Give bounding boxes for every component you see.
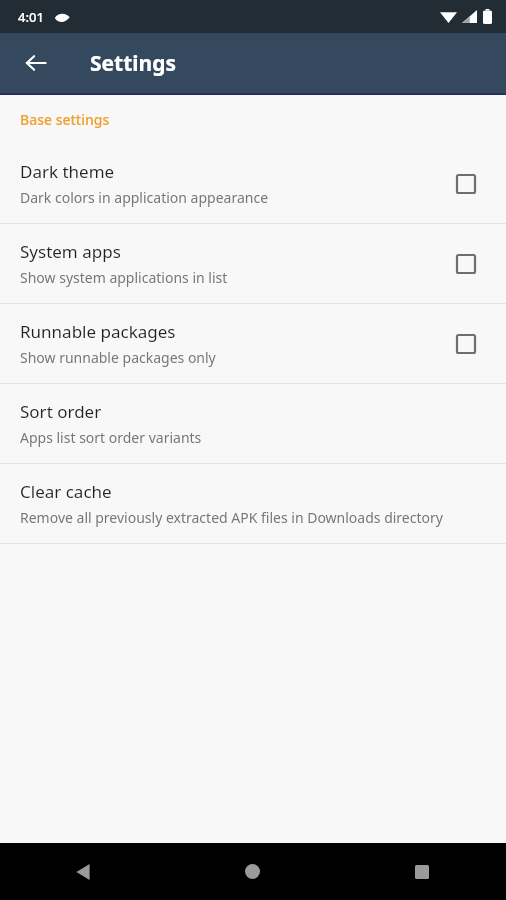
button[interactable]: System apps (0, 224, 506, 303)
staticText: Show system applications in list (20, 268, 420, 287)
button[interactable]: Home (168, 843, 337, 900)
staticText: Base settings (20, 110, 110, 129)
button[interactable]: Back (0, 843, 168, 900)
button[interactable]: System apps (446, 244, 486, 284)
staticText: 4:01 (18, 8, 44, 26)
staticText: Show runnable packages only (20, 348, 420, 367)
staticText: Apps list sort order variants (20, 428, 420, 447)
staticText: Dark theme (20, 160, 115, 183)
button[interactable]: Dark theme (446, 164, 486, 204)
staticText: System apps (20, 240, 121, 263)
button[interactable]: Runnable packages (446, 324, 486, 364)
button[interactable]: Clear cache (0, 464, 506, 543)
staticText: Settings (90, 49, 177, 78)
button[interactable]: Dark theme (0, 144, 506, 223)
staticText: Runnable packages (20, 320, 176, 343)
staticText: Sort order (20, 400, 102, 423)
button[interactable]: Recent apps (337, 843, 506, 900)
button[interactable]: Sort order (0, 384, 506, 463)
staticText: Remove all previously extracted APK file… (20, 508, 450, 527)
staticText: Clear cache (20, 480, 112, 503)
button[interactable]: Runnable packages (0, 304, 506, 383)
button[interactable]: Back (12, 39, 60, 87)
staticText: Dark colors in application appearance (20, 188, 420, 207)
